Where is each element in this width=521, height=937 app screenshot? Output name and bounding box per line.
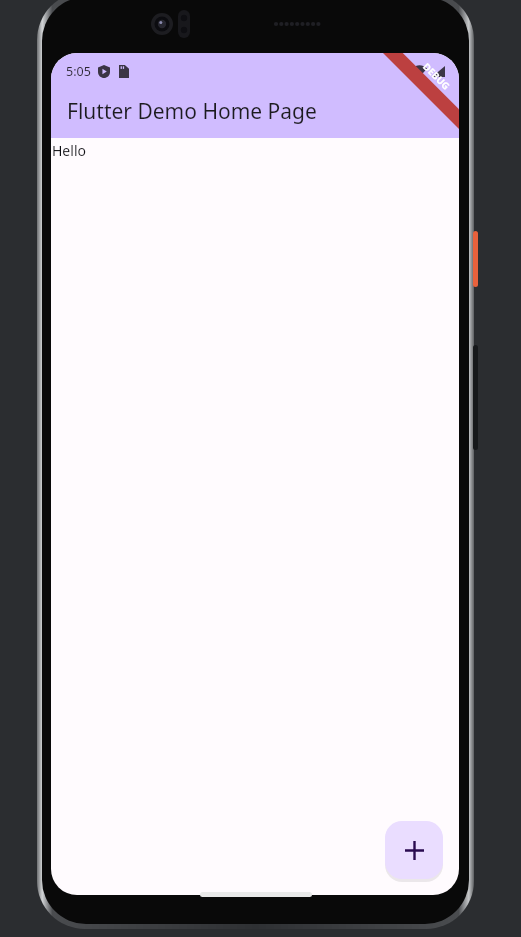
button[interactable]: Increment: [385, 821, 443, 879]
staticText: Hello: [52, 141, 86, 160]
staticText: 5:05: [66, 63, 91, 80]
staticText: DEBUG: [420, 60, 453, 93]
staticText: Flutter Demo Home Page: [67, 97, 317, 126]
